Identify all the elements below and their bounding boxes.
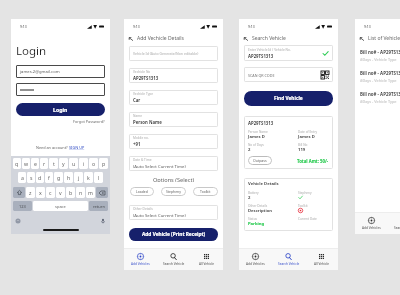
button[interactable]: All Vehicle [305,249,338,270]
button[interactable]: Outpass [248,156,272,165]
button[interactable]: Other Details [129,205,218,220]
button[interactable]: z [26,187,35,198]
button[interactable]: p [99,158,108,169]
button[interactable]: Search Vehicle [272,249,305,270]
button[interactable]: o [89,158,98,169]
staticText: n [79,189,83,196]
button[interactable]: return [89,201,108,211]
button[interactable]: x [36,187,45,198]
button[interactable]: Enter Vehicle Id / Vehicle No. [244,45,333,61]
staticText: Vehicle Id (Auto Generate/Non editable) [133,51,199,56]
button[interactable]: james.2@gmail.com [16,65,105,78]
button[interactable]: Search Vehicle [388,213,400,234]
staticText: AP29TS1313 [133,75,159,81]
button[interactable]: Backspace [96,187,108,198]
staticText: c [49,189,52,196]
button[interactable]: Name [129,112,218,127]
other: Back [243,36,249,42]
staticText: Person Name [133,119,162,125]
staticText: y [62,160,65,167]
staticText: return [93,204,105,209]
button[interactable]: d [36,172,44,183]
button[interactable]: t [49,158,58,169]
button[interactable]: i [79,158,88,169]
button[interactable]: f [45,172,53,183]
button[interactable]: Vehicle Id (Auto Generate/Non editable) [129,46,218,61]
button[interactable]: Loaded [130,187,154,196]
button[interactable]: Find Vehicle [244,91,333,106]
button[interactable] [16,83,105,96]
button[interactable]: a [18,172,26,183]
button[interactable]: w [22,158,30,169]
button[interactable]: 123 [13,201,32,211]
staticText: Vechicle Type [133,92,154,96]
staticText: a [21,174,24,181]
staticText: All Vehicle [314,262,330,266]
button[interactable]: r [40,158,48,169]
button[interactable]: Stepheny [161,187,186,196]
button[interactable]: Vechicle Type [129,90,218,105]
button[interactable]: Vechicle No [129,68,218,83]
button[interactable]: Back [358,35,365,42]
staticText: Mobile no. [133,136,149,140]
button[interactable]: u [69,158,78,169]
button[interactable]: Shift [13,187,25,198]
button[interactable]: SCAN QR CODE [244,67,333,82]
button[interactable]: Login [16,103,105,116]
staticText: SCAN QR CODE [248,73,275,78]
button[interactable]: Emoji [15,218,21,224]
staticText: j [78,174,80,181]
button[interactable]: Forgot Password? [73,119,105,124]
staticText: Search Vehicle [252,35,286,42]
staticText: 9:13 [20,24,27,29]
button[interactable]: k [84,172,93,183]
button[interactable]: y [59,158,68,169]
button[interactable]: q [13,158,21,169]
staticText: 119 [298,147,306,153]
button[interactable]: Date & Time [129,156,218,171]
button[interactable]: s [27,172,35,183]
button[interactable]: Mobile no. [129,134,218,149]
button[interactable]: Voice input [100,218,106,224]
staticText: Login [53,106,68,113]
button[interactable]: v [56,187,65,198]
button[interactable]: n [76,187,85,198]
staticText: Vehicle Details [248,181,279,187]
staticText: i [83,160,85,167]
staticText: Other Details [248,204,268,208]
button[interactable]: h [64,172,73,183]
staticText: Total Amt: 50/- [297,158,329,164]
button[interactable]: Back [242,35,249,42]
staticText: 9:13 [248,24,255,29]
button[interactable]: Toolkit [193,187,218,196]
button[interactable]: Bill no# - AP29TS1313 [355,48,400,63]
staticText: james.2@gmail.com [20,69,60,75]
button[interactable]: Back [127,35,134,42]
staticText: k [87,174,90,181]
button[interactable]: Search Vehicle [157,249,190,270]
other: Scan QR code [321,71,329,79]
staticText: e [34,160,37,167]
button[interactable]: Add Vehicles [124,249,157,270]
button[interactable]: l [94,172,103,183]
button[interactable]: Add Vehicles [355,213,388,234]
staticText: p [102,160,106,167]
staticText: Stepheny [166,189,181,194]
staticText: w [24,160,29,167]
button[interactable]: space [33,201,88,211]
button[interactable]: g [54,172,63,183]
staticText: Find Vehicle [274,95,303,102]
button[interactable]: Bill no# - AP29TS1313 [355,69,400,84]
staticText: Other Details [133,207,153,211]
button[interactable]: All Vehicle [190,249,223,270]
button[interactable]: b [66,187,75,198]
button[interactable]: j [74,172,83,183]
button[interactable]: m [86,187,95,198]
button[interactable]: Add Vehicles [239,249,272,270]
button[interactable]: Add Vehicle (Print Receipt) [129,228,218,241]
button[interactable]: Bill no# - AP29TS1313 [355,90,400,105]
staticText: Search Vehicle [394,226,400,230]
button[interactable]: SIGN UP [69,145,85,150]
button[interactable]: e [31,158,39,169]
button[interactable]: c [46,187,55,198]
